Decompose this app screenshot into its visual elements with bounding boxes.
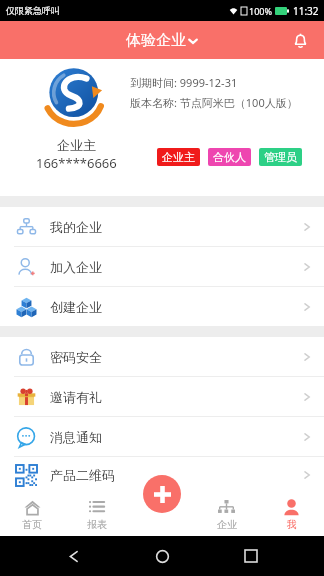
button[interactable]: 产品二维码 [0,457,324,493]
button[interactable]: Home [147,541,177,571]
staticText: 产品二维码 [50,467,115,483]
staticText: 到期时间: 9999-12-31 [130,75,238,90]
button[interactable]: 我 [259,493,324,536]
staticText: 企业主 [162,150,195,164]
button[interactable]: 管理员 [259,148,302,166]
button[interactable]: 企业主 [157,148,200,166]
staticText: 报表 [87,518,107,531]
staticText: 体验企业 [126,31,186,50]
button[interactable]: 合伙人 [208,148,251,166]
staticText: 100% [249,5,272,17]
staticText: 11:32 [293,4,319,18]
staticText: 企业主 [57,137,96,153]
button[interactable]: 首页 [0,493,64,536]
staticText: 消息通知 [50,429,102,445]
staticText: 合伙人 [213,150,246,164]
staticText: 管理员 [264,150,297,164]
button[interactable]: 密码安全 [0,337,324,376]
button[interactable]: Add [143,475,181,513]
staticText: 我的企业 [50,219,102,235]
button[interactable]: 体验企业 [126,31,198,50]
staticText: 邀请有礼 [50,389,102,405]
button[interactable]: Recents [236,541,266,571]
staticText: 企业 [217,518,237,531]
button[interactable]: Notifications [286,26,314,54]
button[interactable]: 创建企业 [0,287,324,326]
button[interactable]: 邀请有礼 [0,377,324,416]
button[interactable]: 加入企业 [0,247,324,286]
button[interactable]: 企业 [194,493,259,536]
staticText: 166****6666 [36,154,117,172]
staticText: 密码安全 [50,349,102,365]
button[interactable]: 消息通知 [0,417,324,456]
staticText: 加入企业 [50,259,102,275]
staticText: 我 [287,518,297,531]
staticText: 创建企业 [50,299,102,315]
staticText: 首页 [22,518,42,531]
button[interactable]: Back [59,541,89,571]
staticText: 版本名称: 节点阿米巴（100人版） [130,95,298,110]
button[interactable]: 我的企业 [0,207,324,246]
staticText: 仅限紧急呼叫 [6,5,60,16]
button[interactable]: 报表 [64,493,129,536]
